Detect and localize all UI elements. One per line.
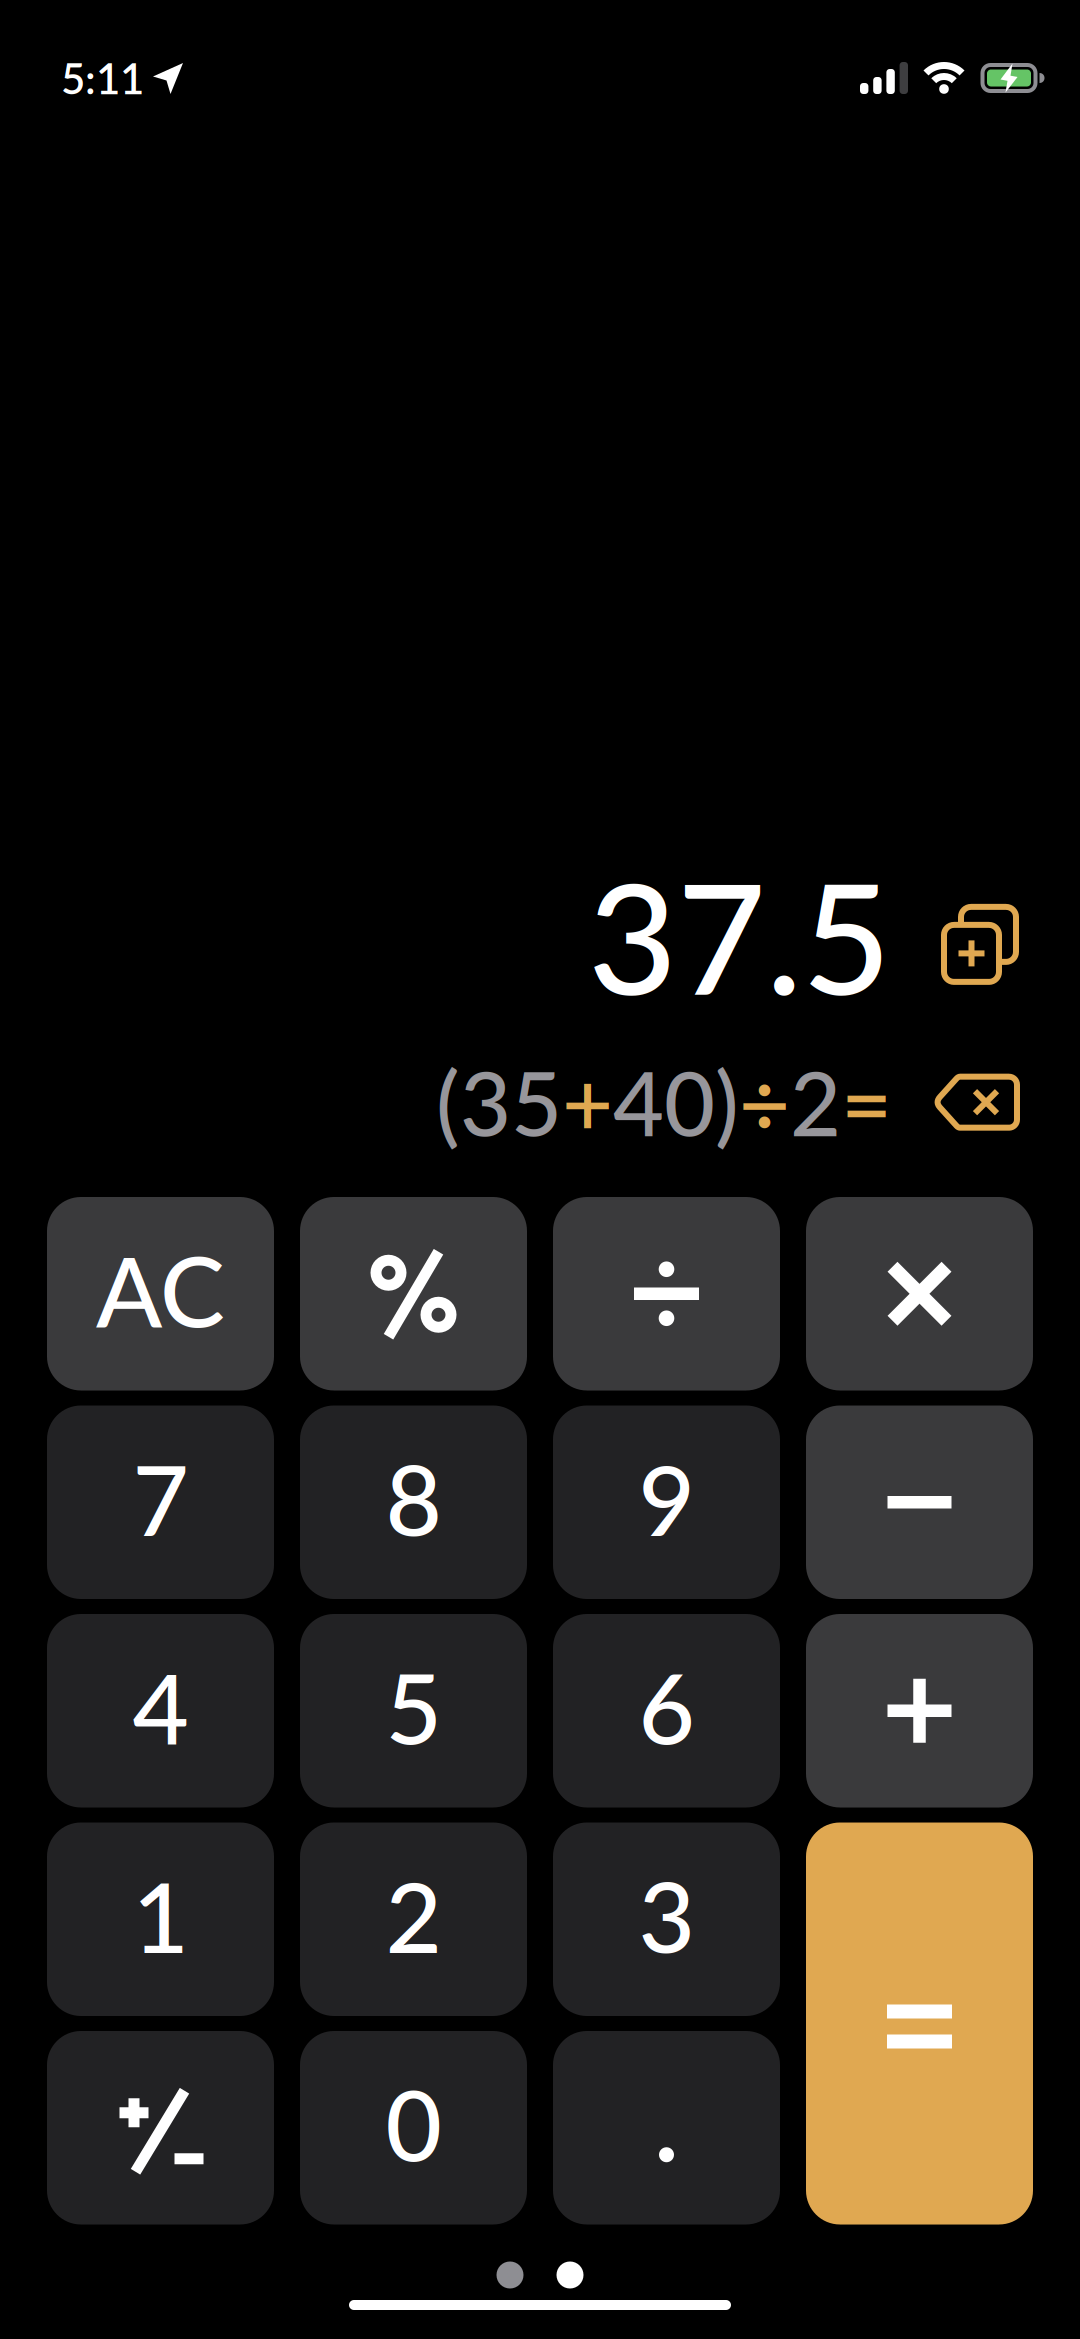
button[interactable]: Copy result <box>936 891 1024 979</box>
button[interactable]: 6 <box>553 1614 780 1807</box>
staticText: 6 <box>638 1648 694 1765</box>
button[interactable]: 7 <box>47 1405 274 1599</box>
button[interactable]: 3 <box>553 1822 780 2016</box>
button[interactable]: Add <box>806 1614 1033 1807</box>
staticText: 5:11 <box>61 53 144 103</box>
button[interactable]: Subtract <box>806 1405 1033 1599</box>
button[interactable]: 2 <box>300 1822 527 2016</box>
staticText: 40) <box>613 1049 739 1155</box>
button[interactable]: 1 <box>47 1822 274 2016</box>
staticText: 7 <box>132 1440 188 1557</box>
staticText: 2 <box>790 1049 841 1155</box>
staticText: AC <box>96 1231 225 1348</box>
staticText: 37.5 <box>588 843 891 1027</box>
button[interactable]: Multiply <box>806 1197 1033 1390</box>
staticText: 9 <box>638 1440 694 1557</box>
button[interactable]: AC <box>47 1197 274 1390</box>
staticText: 3 <box>638 1857 694 1974</box>
staticText: 4 <box>132 1648 188 1765</box>
staticText: 8 <box>385 1440 441 1557</box>
button[interactable]: Equals <box>806 1822 1033 2224</box>
button[interactable]: Decimal point <box>553 2031 780 2224</box>
staticText: (35 <box>436 1049 562 1155</box>
button[interactable]: 0 <box>300 2031 527 2224</box>
button[interactable]: 4 <box>47 1614 274 1807</box>
button[interactable]: Toggle sign <box>47 2031 274 2224</box>
button[interactable]: Percent <box>300 1197 527 1390</box>
staticText: 0 <box>385 2065 441 2182</box>
staticText: + <box>562 1049 613 1155</box>
button[interactable]: Divide <box>553 1197 780 1390</box>
staticText: 1 <box>132 1857 188 1974</box>
button[interactable]: 5 <box>300 1614 527 1807</box>
button[interactable]: 8 <box>300 1405 527 1599</box>
staticText: 2 <box>385 1857 441 1974</box>
button[interactable]: Delete <box>932 1074 1020 1131</box>
button[interactable]: 9 <box>553 1405 780 1599</box>
staticText: ÷ <box>739 1049 790 1155</box>
staticText: = <box>841 1049 892 1155</box>
staticText: 5 <box>385 1648 441 1765</box>
